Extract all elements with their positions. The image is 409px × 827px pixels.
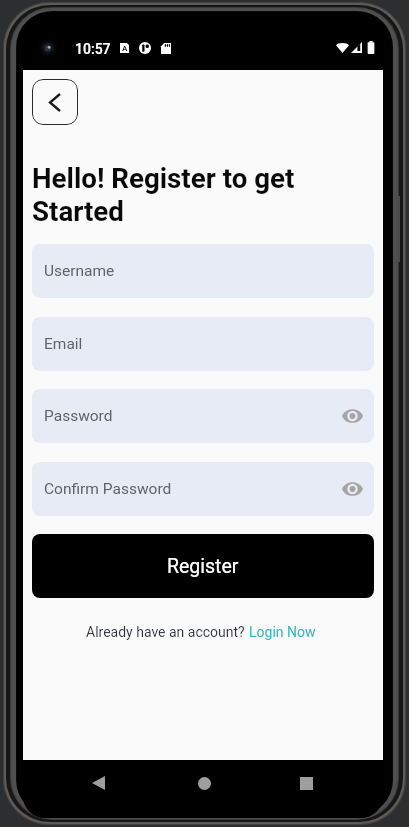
button[interactable]: Confirm Password [32, 462, 374, 516]
button[interactable]: Login Now [249, 624, 316, 640]
staticText: Login Now [249, 624, 316, 640]
staticText: A [122, 44, 128, 53]
button[interactable]: Register [32, 534, 374, 598]
button[interactable]: Home [190, 769, 218, 797]
button[interactable]: Password [32, 389, 374, 443]
button[interactable]: Username [32, 244, 374, 298]
button[interactable]: Show password [342, 408, 363, 424]
staticText: Username [44, 262, 115, 280]
staticText: Register [167, 555, 239, 578]
staticText: Password [44, 407, 113, 425]
staticText: Confirm Password [44, 480, 172, 498]
staticText: Hello! Register to get Started [32, 162, 295, 228]
button[interactable]: Back [32, 79, 78, 125]
button[interactable]: Back [84, 769, 112, 797]
button[interactable]: Recent apps [292, 769, 320, 797]
staticText: 10:57 [75, 41, 111, 57]
button[interactable]: Show password [342, 481, 363, 497]
staticText: Already have an account? [86, 624, 249, 640]
staticText: Email [44, 335, 83, 353]
button[interactable]: Email [32, 317, 374, 371]
